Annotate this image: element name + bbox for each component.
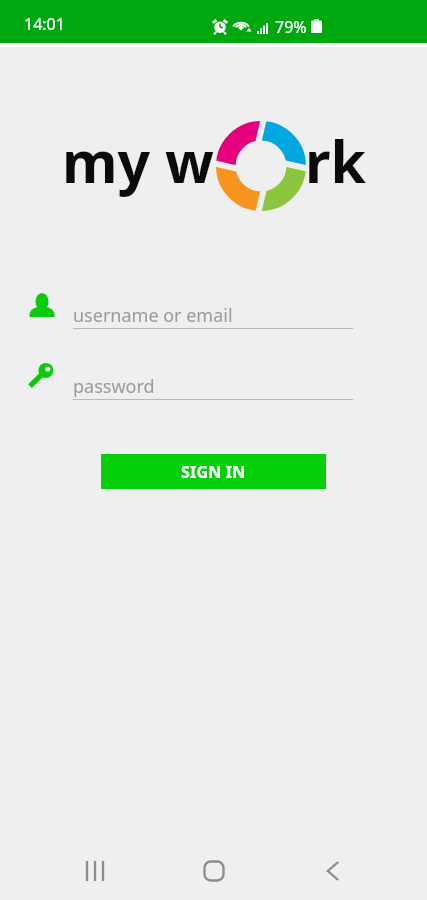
button[interactable]: Home (190, 847, 238, 895)
staticText: SIGN IN (181, 461, 246, 483)
staticText: rk (305, 122, 366, 200)
staticText: 14:01 (24, 13, 65, 35)
button[interactable]: Recent apps (71, 847, 119, 895)
staticText: username or email (73, 303, 233, 328)
button[interactable]: SIGN IN (101, 454, 326, 489)
button[interactable]: Back (309, 847, 357, 895)
staticText: 79% (275, 16, 307, 38)
staticText: my w (62, 122, 214, 200)
staticText: password (73, 374, 155, 399)
